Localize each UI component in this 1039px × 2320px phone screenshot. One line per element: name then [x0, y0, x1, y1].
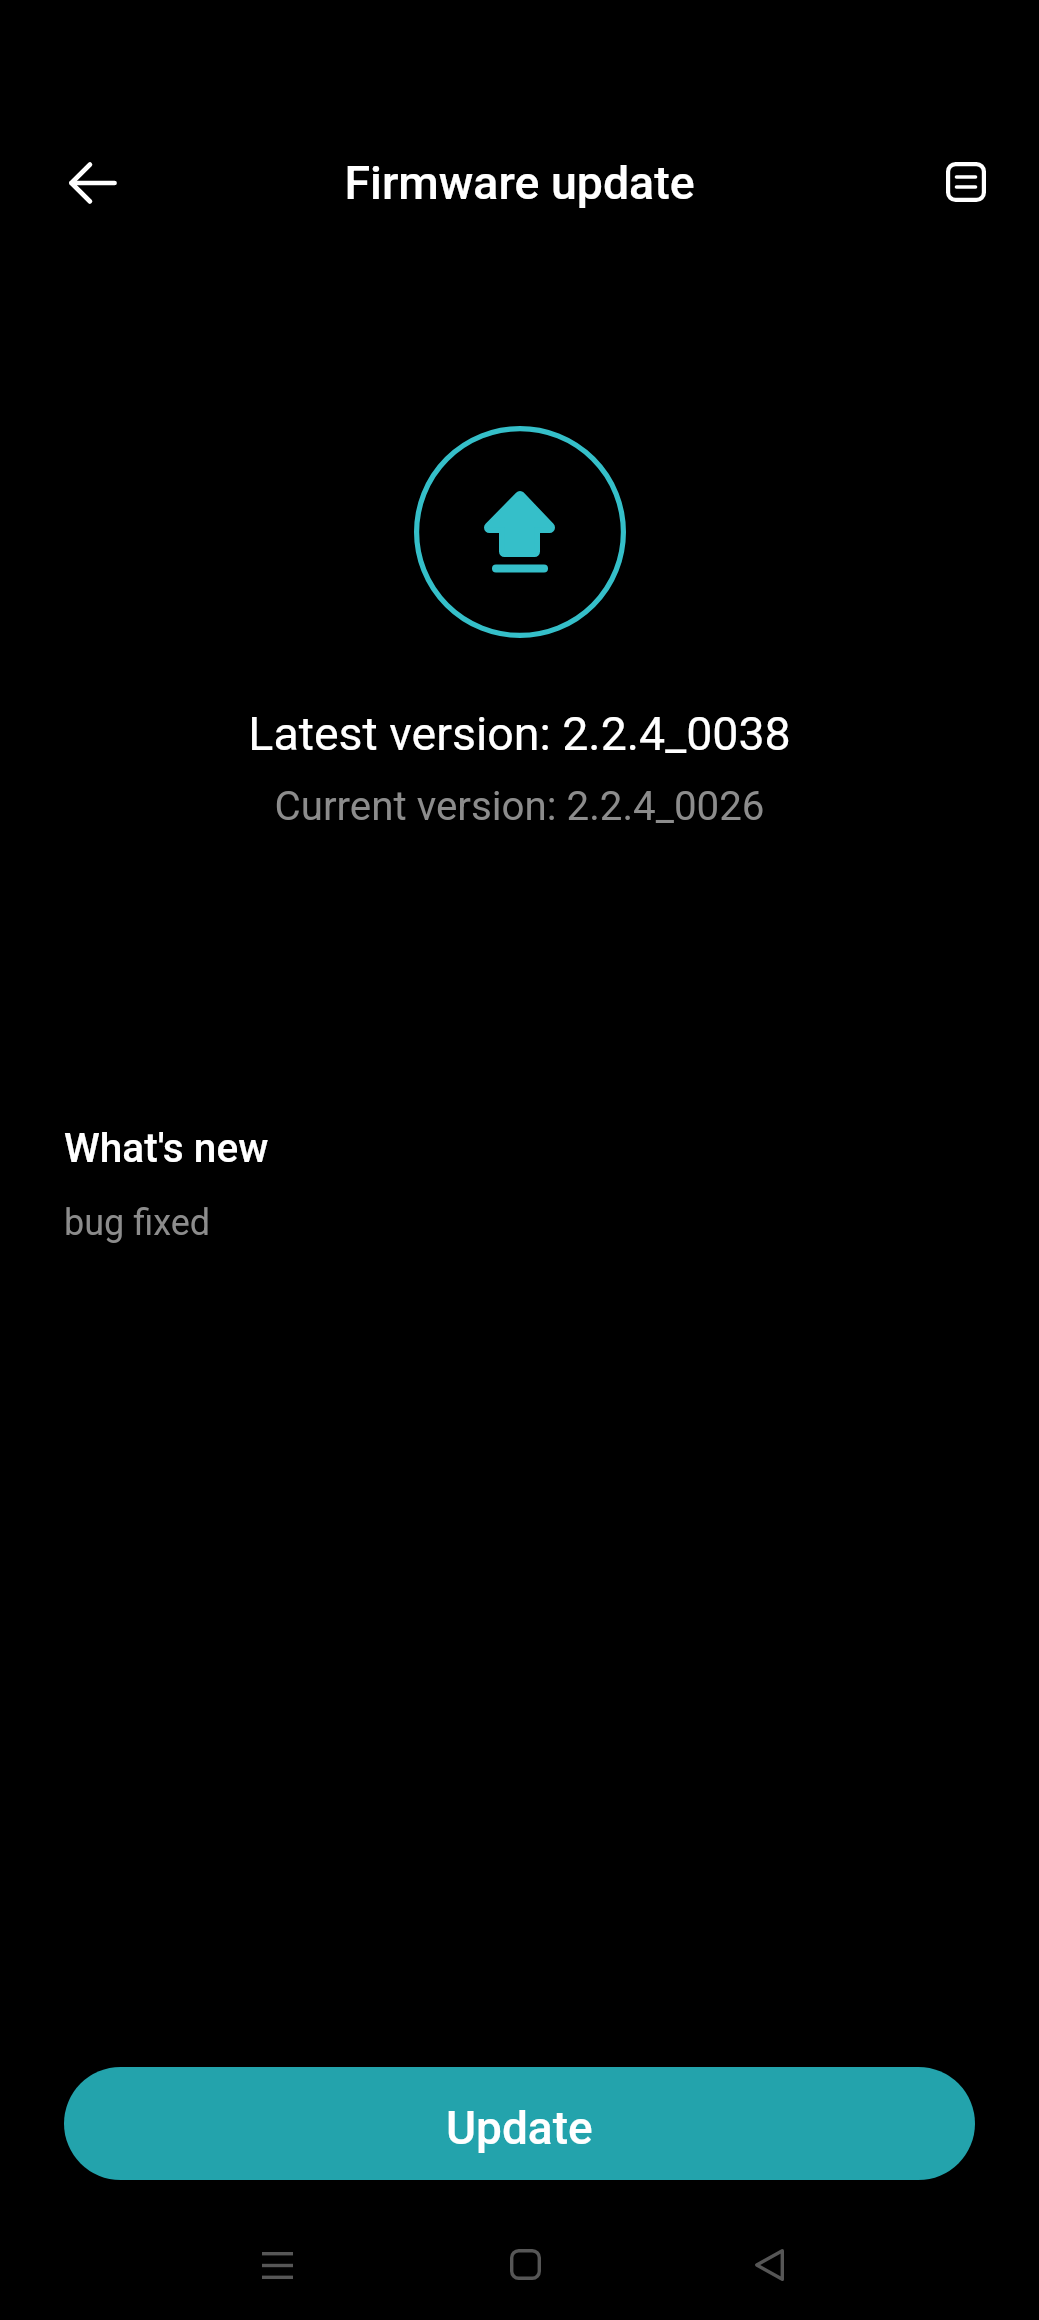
- staticText: Firmware update: [0, 156, 1039, 210]
- button[interactable]: Back: [49, 139, 137, 227]
- staticText: What's new: [64, 1124, 269, 1172]
- button[interactable]: Release notes: [922, 138, 1010, 226]
- button[interactable]: Home: [481, 2220, 569, 2308]
- button[interactable]: Recents: [233, 2221, 321, 2309]
- staticText: Update: [446, 2101, 593, 2155]
- button[interactable]: Navigate back: [725, 2221, 813, 2309]
- staticText: Current version: 2.2.4_0026: [0, 783, 1039, 830]
- staticText: bug fixed: [64, 1202, 211, 1244]
- staticText: Latest version: 2.2.4_0038: [0, 707, 1039, 761]
- button[interactable]: Update: [64, 2067, 975, 2180]
